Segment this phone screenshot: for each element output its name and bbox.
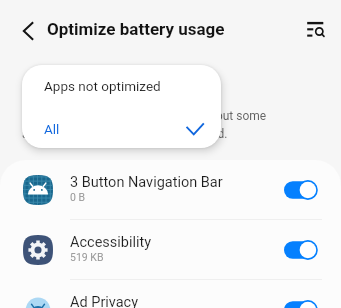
button[interactable]: All [22,106,221,148]
button[interactable]: Toggle optimization [284,239,318,261]
staticText: 519 KB [70,251,104,263]
staticText: Ad Privacy [70,294,139,308]
staticText: All [44,121,60,137]
button[interactable]: 3 Button Navigation Bar [0,160,341,220]
button[interactable]: Navigate up [12,15,44,47]
button[interactable]: Apps not optimized [22,65,221,106]
staticText: Optimize battery usage [47,19,225,39]
button[interactable]: Toggle optimization [284,179,318,201]
staticText: Apps not optimized [44,78,161,94]
button[interactable]: Search [298,14,332,48]
button[interactable]: Ad Privacy [0,280,341,308]
button[interactable]: Accessibility [0,220,341,280]
staticText: 0 B [70,191,86,203]
staticText: Battery usage is optimized for apps, but… [22,109,267,141]
staticText: 3 Button Navigation Bar [70,174,223,191]
staticText: Accessibility [70,234,152,251]
button[interactable]: Toggle optimization [284,299,318,308]
